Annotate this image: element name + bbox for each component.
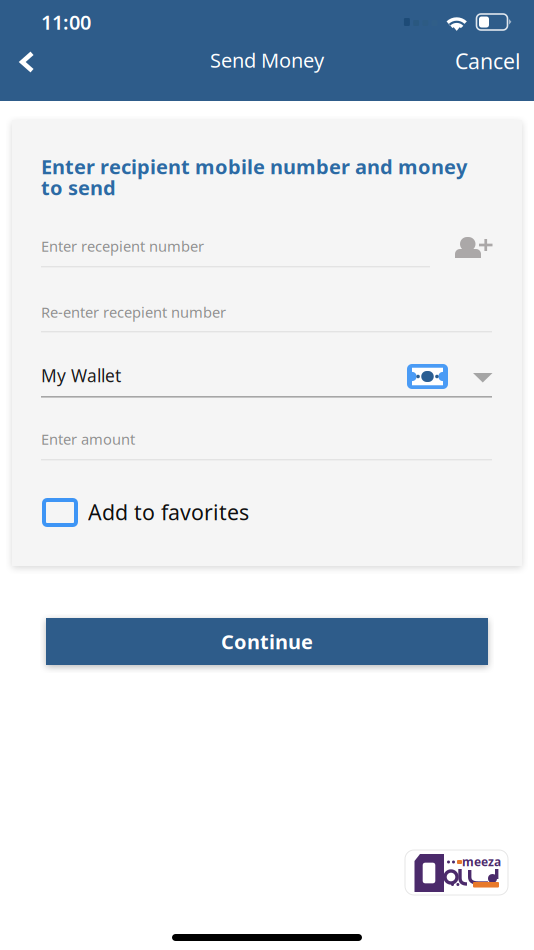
staticText: My Wallet (41, 364, 121, 387)
staticText: Enter recipient mobile number and money (41, 153, 467, 180)
staticText: Continue (221, 628, 313, 655)
button[interactable]: Add contact (447, 231, 499, 266)
staticText: Add to favorites (88, 498, 249, 526)
button[interactable]: My Wallet (41, 366, 492, 412)
staticText: Enter recepient number (41, 236, 204, 256)
staticText: Cancel (455, 47, 521, 75)
staticText: Enter amount (41, 429, 135, 449)
staticText: to send (41, 174, 116, 201)
staticText: Re-enter recepient number (41, 302, 226, 322)
staticText: Send Money (210, 47, 324, 73)
button[interactable]: Back (0, 41, 50, 85)
staticText: meeza (462, 853, 501, 869)
button[interactable]: Continue (46, 618, 488, 665)
button[interactable]: Cancel (441, 44, 534, 83)
button[interactable]: Add to favorites (44, 498, 274, 532)
staticText: 11:00 (41, 9, 91, 35)
